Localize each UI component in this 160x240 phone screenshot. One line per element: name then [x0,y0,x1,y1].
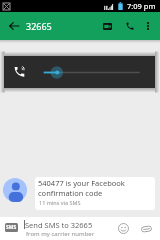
button[interactable]: Emoji [114,217,133,240]
button[interactable]: Video call [96,12,118,40]
staticText: SMS [6,224,17,231]
staticText: 32665 [26,20,52,32]
button[interactable]: More options [138,12,158,40]
staticText: 11 mins via SMS [39,199,81,206]
button[interactable]: Attach [136,217,156,240]
button[interactable]: 540477 is your Facebook confirmation cod… [35,177,155,210]
button[interactable]: Call [119,12,141,40]
button[interactable]: Back [4,12,24,40]
staticText: from my carrier number [26,230,95,238]
staticText: 7:09 pm [127,1,156,11]
staticText: Send SMS to 32665 [25,220,93,230]
button[interactable]: SMS [5,223,18,232]
staticText: 540477 is your Facebook confirmation cod… [38,178,125,198]
